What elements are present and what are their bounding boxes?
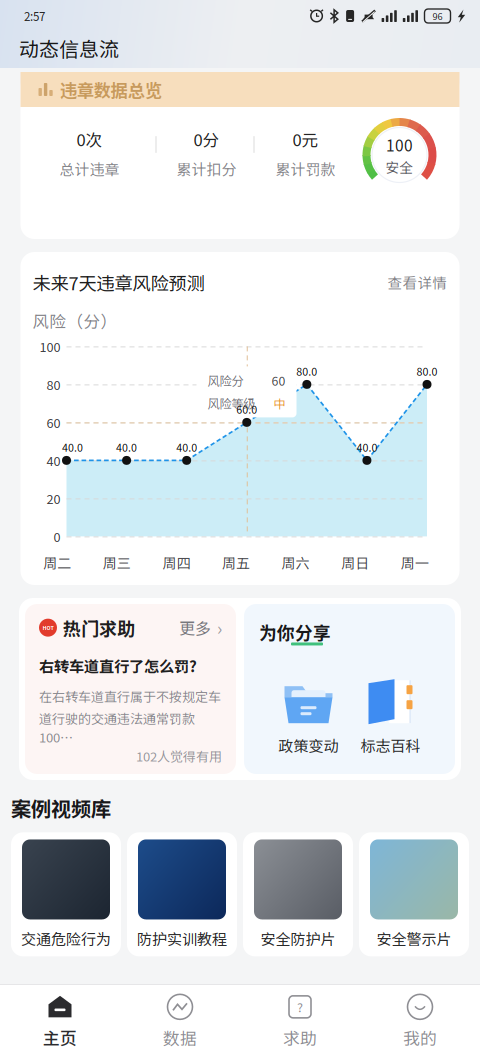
staticText: 风险（分） — [32, 308, 117, 332]
staticText: 主页 — [43, 1025, 77, 1050]
staticText: ? — [297, 998, 303, 1016]
staticText: 求助 — [283, 1025, 317, 1050]
button[interactable]: HOT — [25, 604, 236, 774]
staticText: 道行驶的交通违法通常罚款100… — [39, 708, 195, 746]
staticText: 100 — [39, 337, 60, 356]
staticText: 20 — [46, 489, 60, 508]
staticText: 周四 — [162, 552, 190, 573]
staticText: 累计扣分 — [176, 158, 236, 179]
staticText: 交通危险行为 — [21, 927, 111, 949]
staticText: 40 — [46, 451, 60, 470]
staticText: 累计罚款 — [275, 158, 335, 179]
staticText: 风险等级 — [207, 394, 255, 412]
staticText: 周六 — [282, 552, 310, 573]
staticText: HOT — [42, 624, 53, 631]
staticText: 102人觉得有用 — [136, 746, 222, 765]
staticText: 周日 — [341, 552, 369, 573]
button[interactable]: 数据 — [120, 984, 240, 1061]
button[interactable]: 我的 — [360, 984, 480, 1061]
button[interactable]: 防护实训教程 — [127, 832, 237, 956]
staticText: 40.0 — [176, 439, 197, 455]
staticText: 未来7天违章风险预测 — [32, 269, 204, 295]
staticText: 40.0 — [356, 439, 377, 455]
staticText: 热门求助 — [63, 615, 135, 641]
staticText: 80 — [46, 375, 60, 394]
staticText: 96 — [432, 9, 442, 23]
button[interactable]: 安全警示片 — [359, 832, 469, 956]
staticText: 我的 — [403, 1025, 437, 1050]
staticText: 周三 — [103, 552, 131, 573]
button[interactable]: 查看详情 — [387, 272, 447, 293]
staticText: 违章数据总览 — [60, 77, 162, 102]
staticText: 在右转车道直行属于不按规定车 — [39, 687, 221, 705]
staticText: 60 — [271, 372, 285, 389]
staticText: 政策变动 — [278, 734, 338, 756]
staticText: 标志百科 — [360, 734, 420, 756]
staticText: 查看详情 — [387, 272, 447, 293]
staticText: 数据 — [163, 1025, 197, 1050]
staticText: › — [217, 615, 222, 640]
staticText: 安全 — [385, 157, 413, 177]
staticText: 风险分 — [207, 372, 243, 389]
staticText: 0次 — [76, 127, 102, 151]
staticText: 40.0 — [62, 439, 83, 455]
staticText: 80.0 — [296, 363, 317, 379]
button[interactable]: 主页 — [0, 984, 120, 1061]
staticText: 周一 — [401, 552, 429, 573]
staticText: 安全警示片 — [376, 927, 451, 949]
staticText: 中 — [273, 394, 285, 412]
staticText: 更多 — [179, 616, 211, 639]
staticText: 周二 — [43, 552, 71, 573]
staticText: 0 — [53, 527, 60, 546]
staticText: 80.0 — [416, 363, 437, 379]
staticText: 案例视频库 — [11, 793, 111, 822]
button[interactable]: 安全防护片 — [243, 832, 353, 956]
staticText: 右转车道直行了怎么罚? — [39, 655, 197, 677]
staticText: 安全防护片 — [260, 927, 335, 949]
staticText: 100 — [386, 133, 413, 156]
staticText: 60.0 — [236, 401, 257, 417]
staticText: 2:57 — [24, 8, 45, 24]
button[interactable]: 交通危险行为 — [11, 832, 121, 956]
staticText: 60 — [46, 413, 60, 432]
button[interactable]: ? — [240, 984, 360, 1061]
button[interactable]: 标志百科 — [360, 679, 420, 756]
staticText: 0分 — [193, 127, 219, 151]
button[interactable]: 政策变动 — [278, 679, 338, 756]
staticText: 总计违章 — [59, 158, 119, 179]
staticText: 防护实训教程 — [137, 927, 227, 949]
staticText: 40.0 — [116, 439, 137, 455]
staticText: 为你分享 — [259, 619, 331, 644]
staticText: 周五 — [222, 552, 250, 573]
staticText: 0元 — [292, 127, 318, 151]
staticText: 动态信息流 — [19, 33, 119, 62]
